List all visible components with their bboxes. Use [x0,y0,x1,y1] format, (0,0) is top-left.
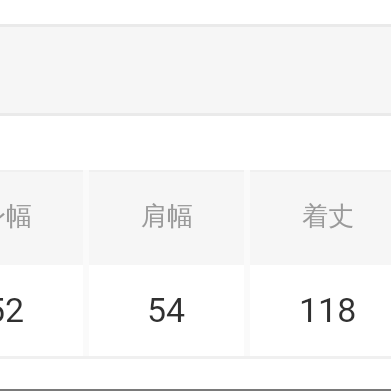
button[interactable]: 54 [86,264,247,356]
button[interactable]: 118 [247,264,391,356]
button[interactable]: 52 [0,264,86,356]
staticText: 118 [299,290,357,330]
staticText: 52 [0,290,25,330]
button[interactable]: 肩幅 [86,169,247,264]
staticText: 54 [147,290,186,330]
staticText: 身幅 [0,200,32,233]
button[interactable]: 着丈 [247,169,391,264]
staticText: 着丈 [302,200,354,233]
staticText: 肩幅 [141,200,193,233]
button[interactable]: 身幅 [0,169,86,264]
